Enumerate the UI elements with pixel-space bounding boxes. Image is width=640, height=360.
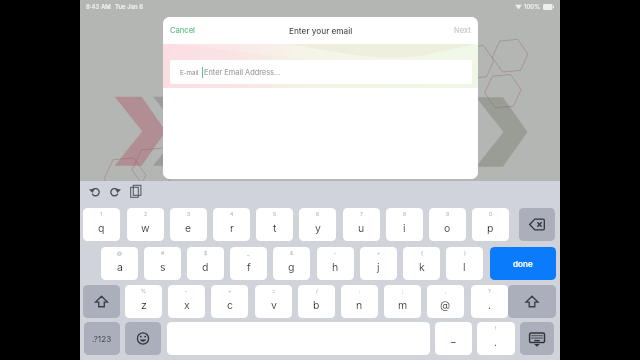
button[interactable]: ( bbox=[403, 247, 440, 280]
staticText: h bbox=[332, 261, 339, 274]
staticText: ! bbox=[495, 325, 497, 331]
staticText: = bbox=[272, 288, 276, 294]
staticText: g bbox=[288, 261, 295, 274]
staticText: % bbox=[141, 288, 147, 294]
staticText: 8 bbox=[403, 211, 407, 217]
staticText: 100% bbox=[524, 3, 541, 10]
staticText: 6 bbox=[316, 211, 320, 217]
staticText: E-mail bbox=[180, 69, 199, 77]
staticText: + bbox=[228, 288, 232, 294]
staticText: s bbox=[160, 261, 166, 274]
staticText: + bbox=[377, 250, 381, 256]
button[interactable]: $ bbox=[187, 247, 224, 280]
button[interactable]: , bbox=[427, 285, 464, 318]
button[interactable]: Undo bbox=[87, 183, 104, 200]
button[interactable]: % bbox=[125, 285, 162, 318]
button[interactable]: Paste bbox=[127, 183, 144, 200]
button[interactable]: Shift bbox=[508, 285, 556, 318]
button[interactable]: + bbox=[211, 285, 248, 318]
button[interactable]: Next bbox=[454, 26, 471, 35]
button[interactable]: Backspace bbox=[519, 208, 555, 241]
button[interactable]: = bbox=[255, 285, 292, 318]
button[interactable]: - bbox=[317, 247, 354, 280]
button[interactable]: : bbox=[341, 285, 378, 318]
staticText: ( bbox=[421, 250, 423, 256]
button[interactable]: ; bbox=[384, 285, 421, 318]
button[interactable]: / bbox=[298, 285, 335, 318]
button[interactable]: done bbox=[490, 247, 556, 280]
staticText: 2 bbox=[144, 211, 148, 217]
button[interactable]: - bbox=[168, 285, 205, 318]
button[interactable]: 7 bbox=[343, 208, 380, 241]
staticText: ; bbox=[402, 288, 404, 294]
staticText: v bbox=[271, 299, 277, 312]
staticText: _ bbox=[451, 332, 456, 345]
button[interactable]: & bbox=[273, 247, 310, 280]
staticText: a bbox=[117, 261, 123, 274]
button[interactable]: @ bbox=[101, 247, 138, 280]
staticText: y bbox=[315, 222, 321, 235]
staticText: Next bbox=[454, 26, 471, 35]
button[interactable]: _ bbox=[230, 247, 267, 280]
button[interactable]: ) bbox=[446, 247, 483, 280]
button[interactable]: ! bbox=[477, 322, 515, 355]
staticText: _ bbox=[247, 250, 250, 256]
button[interactable]: Hide keyboard bbox=[520, 322, 554, 355]
button[interactable]: E-mail bbox=[170, 60, 472, 84]
button[interactable]: .?123 bbox=[84, 322, 120, 355]
staticText: done bbox=[513, 259, 533, 269]
staticText: .?123 bbox=[92, 334, 112, 344]
button[interactable]: _ bbox=[435, 322, 472, 355]
button[interactable]: 4 bbox=[213, 208, 250, 241]
staticText: . bbox=[494, 336, 498, 349]
staticText: e bbox=[185, 222, 192, 235]
button[interactable]: ? bbox=[471, 285, 508, 318]
staticText: - bbox=[185, 288, 188, 294]
button[interactable]: 1 bbox=[83, 208, 120, 241]
button[interactable]: 9 bbox=[429, 208, 466, 241]
staticText: 1 bbox=[100, 211, 103, 217]
staticText: u bbox=[358, 222, 365, 235]
staticText: p bbox=[487, 222, 494, 235]
staticText: 7 bbox=[360, 211, 363, 217]
staticText: i bbox=[403, 222, 406, 235]
staticText: z bbox=[141, 299, 147, 312]
staticText: 3 bbox=[187, 211, 191, 217]
button[interactable]: + bbox=[360, 247, 397, 280]
staticText: , bbox=[445, 288, 447, 294]
staticText: j bbox=[377, 261, 380, 274]
button[interactable]: # bbox=[144, 247, 181, 280]
button[interactable]: Shift bbox=[83, 285, 120, 318]
staticText: . bbox=[488, 299, 492, 312]
staticText: m bbox=[398, 299, 408, 312]
staticText: o bbox=[444, 222, 451, 235]
staticText: 9 bbox=[446, 211, 450, 217]
staticText: l bbox=[463, 261, 466, 274]
staticText: ) bbox=[464, 250, 466, 256]
staticText: Cancel bbox=[170, 26, 195, 35]
staticText: 4 bbox=[230, 211, 234, 217]
button[interactable]: Emoji bbox=[125, 322, 161, 355]
staticText: 8:43 AM bbox=[86, 3, 111, 10]
staticText: f bbox=[247, 261, 251, 274]
staticText: Enter your email bbox=[289, 26, 353, 36]
staticText: Tue Jan 8 bbox=[115, 3, 144, 10]
button[interactable]: 0 bbox=[472, 208, 509, 241]
staticText: / bbox=[316, 288, 318, 294]
staticText: c bbox=[227, 299, 233, 312]
button[interactable]: 2 bbox=[127, 208, 164, 241]
button[interactable]: Redo bbox=[106, 183, 123, 200]
staticText: q bbox=[98, 222, 105, 235]
staticText: Enter Email Address... bbox=[204, 68, 281, 77]
button[interactable]: 6 bbox=[299, 208, 336, 241]
staticText: @ bbox=[117, 250, 123, 256]
button[interactable]: 5 bbox=[256, 208, 293, 241]
staticText: 5 bbox=[273, 211, 277, 217]
staticText: w bbox=[141, 222, 150, 235]
button[interactable]: Cancel bbox=[170, 26, 195, 35]
button[interactable]: 8 bbox=[386, 208, 423, 241]
staticText: k bbox=[419, 261, 425, 274]
button[interactable]: 3 bbox=[170, 208, 207, 241]
staticText: # bbox=[161, 250, 165, 256]
